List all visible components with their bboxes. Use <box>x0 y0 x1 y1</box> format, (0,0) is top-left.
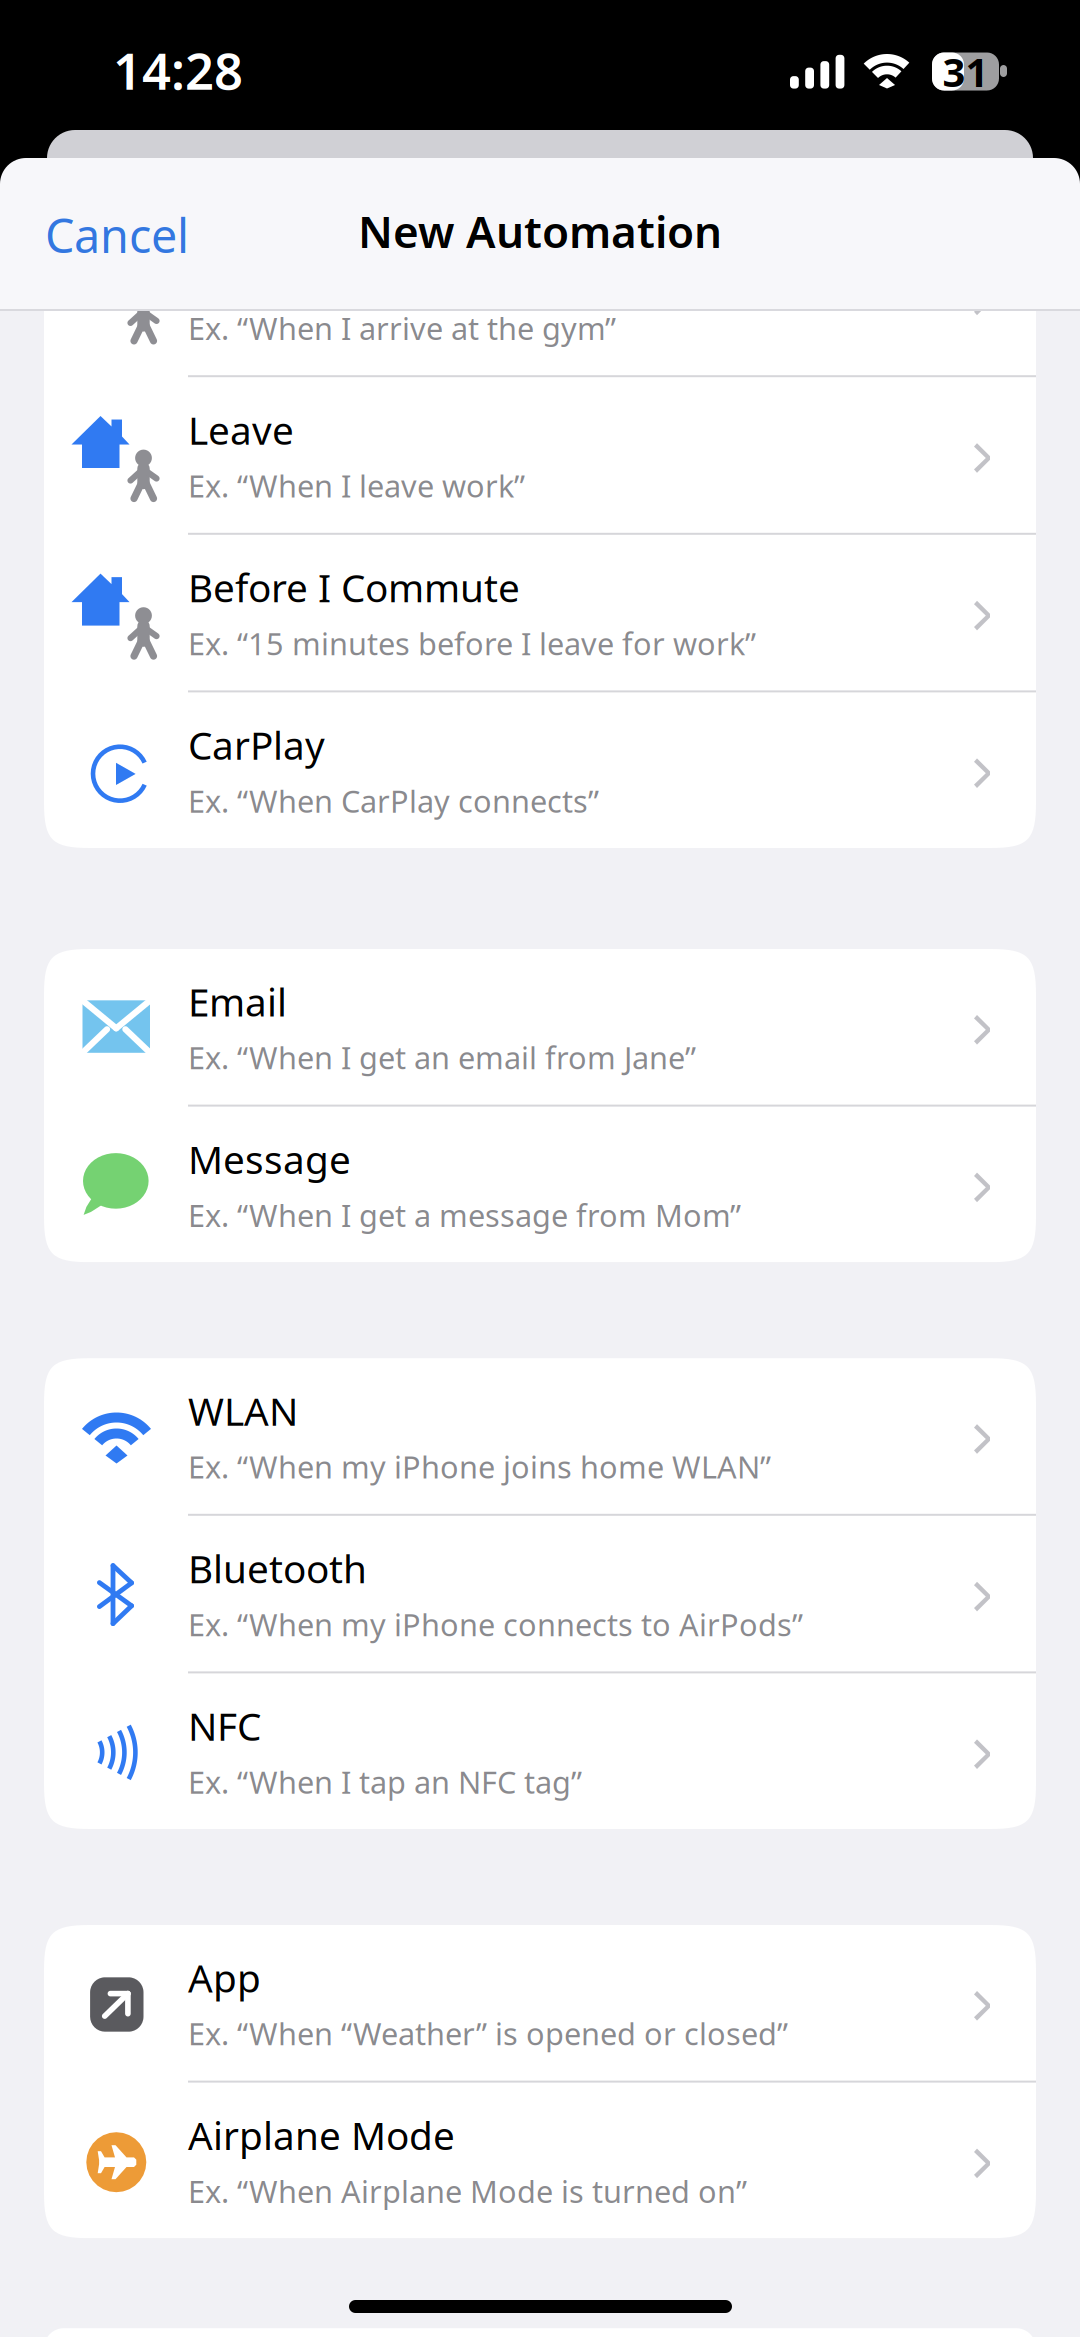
staticText: Ex. “When I arrive at the gym” <box>188 308 616 348</box>
button[interactable]: Message <box>44 1107 1036 1262</box>
staticText: Ex. “When I tap an NFC tag” <box>188 1761 582 1802</box>
staticText: App <box>188 1952 261 2003</box>
button[interactable]: Bluetooth <box>44 1516 1036 1671</box>
button[interactable]: Cancel <box>0 185 245 285</box>
staticText: Ex. “When Airplane Mode is turned on” <box>188 2171 747 2211</box>
button[interactable]: Email <box>44 949 1036 1105</box>
staticText: Bluetooth <box>188 1543 367 1594</box>
button[interactable]: WLAN <box>44 1358 1036 1514</box>
staticText: 31 <box>942 45 988 98</box>
button[interactable]: App <box>44 1925 1036 2081</box>
button[interactable]: NFC <box>44 1673 1036 1829</box>
staticText: CarPlay <box>188 719 325 770</box>
staticText: Ex. “When my iPhone joins home WLAN” <box>188 1446 771 1487</box>
staticText: Ex. “When I leave work” <box>188 465 525 506</box>
staticText: Message <box>188 1133 351 1185</box>
staticText: Before I Commute <box>188 562 520 613</box>
staticText: NFC <box>188 1700 261 1751</box>
staticText: Ex. “When “Weather” is opened or closed” <box>188 2013 788 2054</box>
staticText: Ex. “15 minutes before I leave for work” <box>188 623 756 664</box>
staticText: Ex. “When CarPlay connects” <box>188 780 599 821</box>
staticText: Airplane Mode <box>188 2109 455 2161</box>
button[interactable]: Arrive <box>44 220 1036 375</box>
button[interactable]: Airplane Mode <box>44 2083 1036 2238</box>
staticText: WLAN <box>188 1385 298 1436</box>
button[interactable]: CarPlay <box>44 692 1036 848</box>
staticText: Ex. “When my iPhone connects to AirPods” <box>188 1604 803 1645</box>
button[interactable]: Leave <box>44 377 1036 533</box>
staticText: Email <box>188 976 287 1027</box>
staticText: Ex. “When I get a message from Mom” <box>188 1195 741 1235</box>
button[interactable]: Before I Commute <box>44 535 1036 690</box>
staticText: Leave <box>188 404 294 455</box>
staticText: Cancel <box>45 204 189 266</box>
staticText: New Automation <box>358 202 722 260</box>
staticText: 14:28 <box>113 36 243 104</box>
staticText: Ex. “When I get an email from Jane” <box>188 1037 696 1078</box>
